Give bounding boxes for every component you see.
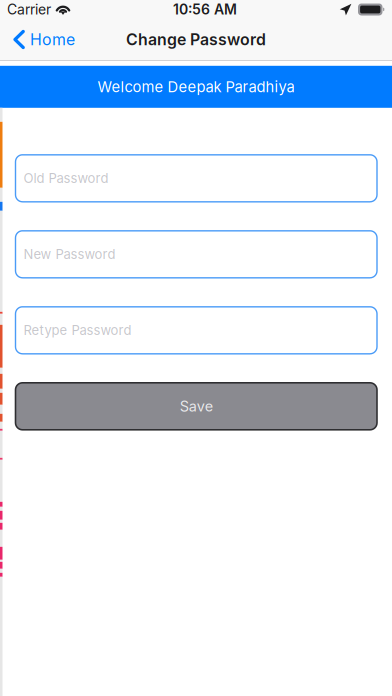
button[interactable]: Home [0, 19, 87, 60]
staticText: Old Password [23, 170, 108, 186]
staticText: 10:56 AM [173, 1, 237, 18]
staticText: New Password [23, 246, 115, 262]
staticText: Retype Password [23, 322, 131, 338]
staticText: Welcome Deepak Paradhiya [97, 78, 294, 96]
button[interactable]: Save [15, 383, 377, 430]
staticText: Change Password [126, 30, 266, 49]
staticText: Carrier [7, 1, 51, 18]
staticText: Save [180, 397, 213, 415]
staticText: Home [30, 30, 75, 49]
